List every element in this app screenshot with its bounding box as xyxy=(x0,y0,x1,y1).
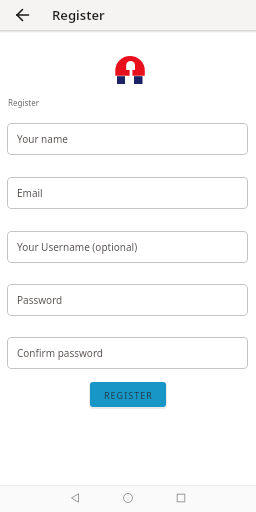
button[interactable] xyxy=(62,485,88,511)
button[interactable]: Your name xyxy=(7,123,248,155)
button[interactable]: Your Username (optional) xyxy=(7,231,248,263)
staticText: Register xyxy=(8,97,40,108)
button[interactable]: Email xyxy=(7,177,248,209)
staticText: Confirm password xyxy=(17,346,103,360)
staticText: Your name xyxy=(17,132,68,146)
staticText: Your Username (optional) xyxy=(17,240,138,254)
button[interactable] xyxy=(0,0,44,30)
staticText: Password xyxy=(17,293,63,307)
staticText: REGISTER xyxy=(104,389,153,401)
button[interactable]: Password xyxy=(7,284,248,316)
button[interactable]: Confirm password xyxy=(7,337,248,369)
staticText: Register xyxy=(52,6,105,24)
button[interactable] xyxy=(115,485,141,511)
button[interactable]: REGISTER xyxy=(90,382,166,407)
staticText: Email xyxy=(17,186,43,200)
button[interactable] xyxy=(168,485,194,511)
